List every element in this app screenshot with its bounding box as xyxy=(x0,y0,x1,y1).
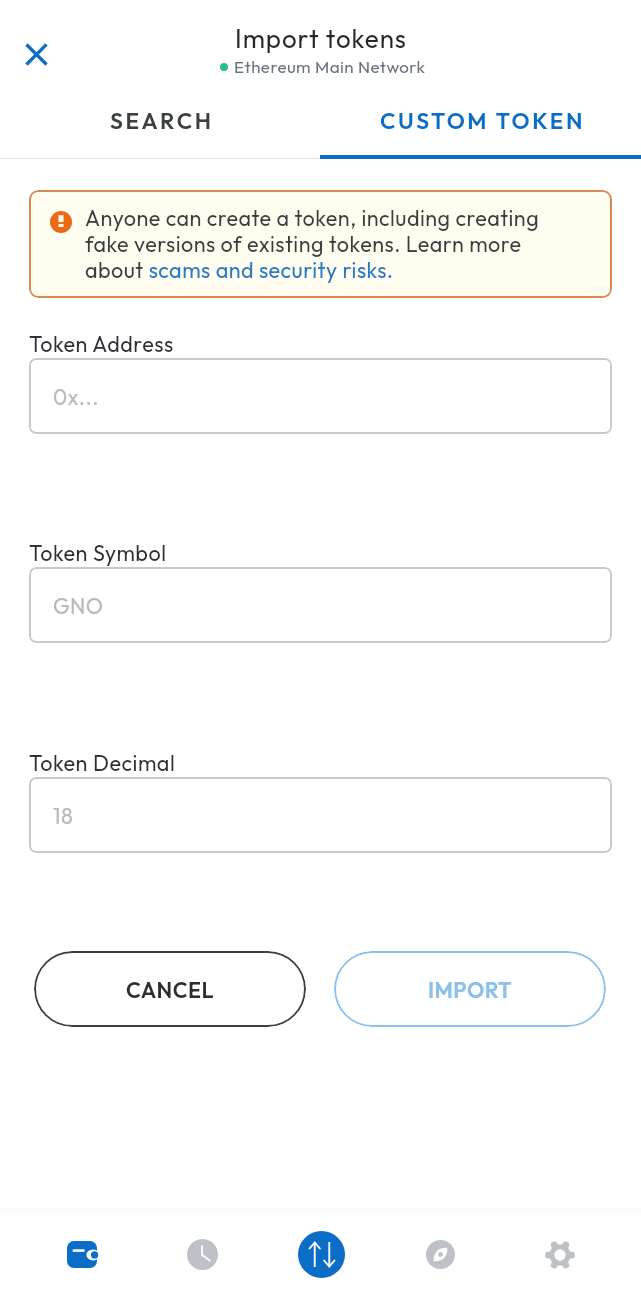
button[interactable]: Transaction history xyxy=(142,1220,262,1289)
button[interactable]: Swap xyxy=(262,1220,381,1289)
button[interactable]: GNO xyxy=(29,567,612,643)
staticText: Token Address xyxy=(29,330,174,357)
button[interactable]: CUSTOM TOKEN xyxy=(322,85,641,154)
staticText: Import tokens xyxy=(235,22,407,55)
button[interactable]: 0x... xyxy=(29,358,612,434)
staticText: Token Decimal xyxy=(29,749,176,776)
button[interactable]: 18 xyxy=(29,777,612,853)
button[interactable]: Settings xyxy=(500,1220,619,1289)
staticText: Anyone can create a token, including cre… xyxy=(85,205,570,283)
button[interactable]: CANCEL xyxy=(34,951,306,1027)
staticText: Ethereum Main Network xyxy=(234,56,426,77)
button[interactable]: Close xyxy=(12,30,60,78)
staticText: Token Symbol xyxy=(29,539,167,566)
staticText: GNO xyxy=(53,592,104,619)
staticText: 18 xyxy=(53,802,74,829)
staticText: IMPORT xyxy=(428,976,513,1003)
button[interactable]: Browser xyxy=(381,1220,500,1289)
button[interactable]: SEARCH xyxy=(2,85,322,154)
staticText: CANCEL xyxy=(126,976,214,1003)
staticText: CUSTOM TOKEN xyxy=(380,106,585,134)
staticText: 0x... xyxy=(53,383,99,410)
button[interactable]: Wallet xyxy=(22,1220,142,1289)
staticText: SEARCH xyxy=(110,106,214,134)
button[interactable]: IMPORT xyxy=(334,951,606,1027)
